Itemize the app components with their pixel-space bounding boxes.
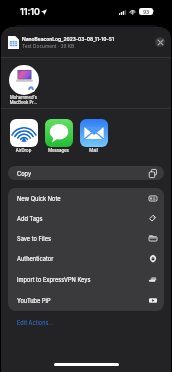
staticText: Copy [17, 170, 149, 177]
button[interactable]: Mail [76, 119, 111, 153]
staticText: 11:10 [20, 6, 40, 17]
button[interactable]: New Quick Note [8, 188, 164, 208]
button[interactable]: Copy [8, 166, 164, 180]
button[interactable]: Import to ExpressVPN Keys [8, 269, 164, 290]
button[interactable]: Close [155, 37, 165, 47]
staticText: Authenticator [17, 255, 149, 262]
staticText: YouTube PiP [17, 297, 149, 304]
staticText: 93 [143, 9, 149, 15]
staticText: Add Tags [17, 215, 149, 222]
button[interactable]: Authenticator [8, 248, 164, 269]
button[interactable]: Edit Actions… [17, 320, 54, 327]
staticText: Messages [41, 148, 76, 153]
staticText: Edit Actions… [17, 320, 54, 327]
staticText: New Quick Note [17, 195, 149, 202]
button[interactable]: AirDrop [6, 119, 41, 153]
staticText: Save to Files [17, 235, 149, 242]
button[interactable]: Add Tags [8, 208, 164, 228]
button[interactable]: Messages [41, 119, 76, 153]
staticText: AirDrop [6, 148, 41, 153]
staticText: NanoBeaconLog_2023-03-08_11-10-51 [22, 36, 114, 42]
staticText: Mail [76, 148, 111, 153]
staticText: Text Document · 39 KB [22, 43, 75, 49]
button[interactable]: YouTube PiP [8, 290, 164, 311]
staticText: Mohammed's MacBook Pr… [2, 95, 45, 105]
button[interactable]: Mohammed's MacBook Pr… [2, 65, 45, 105]
button[interactable]: Save to Files [8, 228, 164, 248]
staticText: Import to ExpressVPN Keys [17, 276, 149, 283]
